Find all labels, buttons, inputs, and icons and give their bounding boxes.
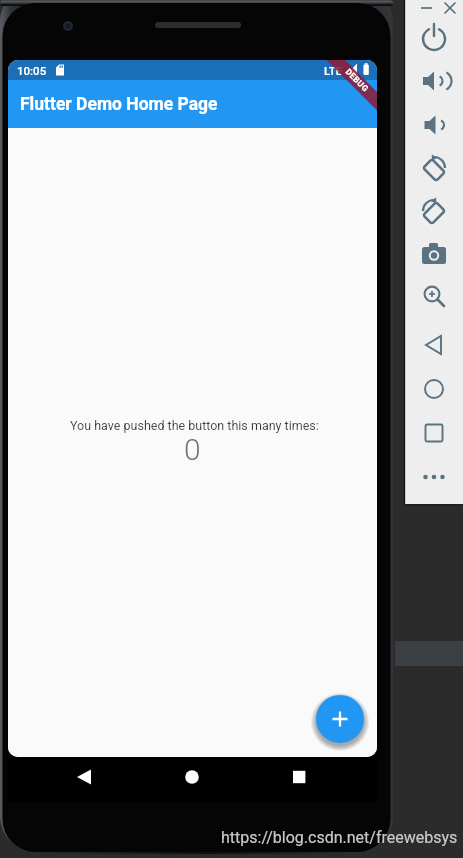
button[interactable]: Back: [413, 328, 455, 362]
staticText: Flutter Demo Home Page: [20, 94, 218, 115]
button[interactable]: Zoom: [413, 280, 455, 314]
staticText: You have pushed the button this many tim…: [70, 418, 319, 433]
button[interactable]: Increment: [316, 695, 364, 743]
button[interactable]: Overview: [413, 416, 455, 450]
button[interactable]: Volume up: [413, 64, 455, 98]
button[interactable]: Minimise: [416, 0, 438, 17]
button[interactable]: More: [413, 460, 455, 494]
staticText: 0: [184, 432, 201, 467]
button[interactable]: Power: [413, 21, 455, 55]
button[interactable]: Rotate left: [413, 151, 455, 185]
button[interactable]: Rotate right: [413, 194, 455, 228]
button[interactable]: Volume down: [413, 108, 455, 142]
staticText: https://blog.csdn.net/freewebsys: [221, 828, 458, 847]
staticText: DEBUG: [344, 67, 371, 94]
staticText: 10:05: [17, 64, 47, 77]
button[interactable]: Close: [440, 0, 462, 17]
staticText: LTE: [324, 64, 343, 77]
button[interactable]: Home: [413, 372, 455, 406]
button[interactable]: Take screenshot: [413, 237, 455, 271]
